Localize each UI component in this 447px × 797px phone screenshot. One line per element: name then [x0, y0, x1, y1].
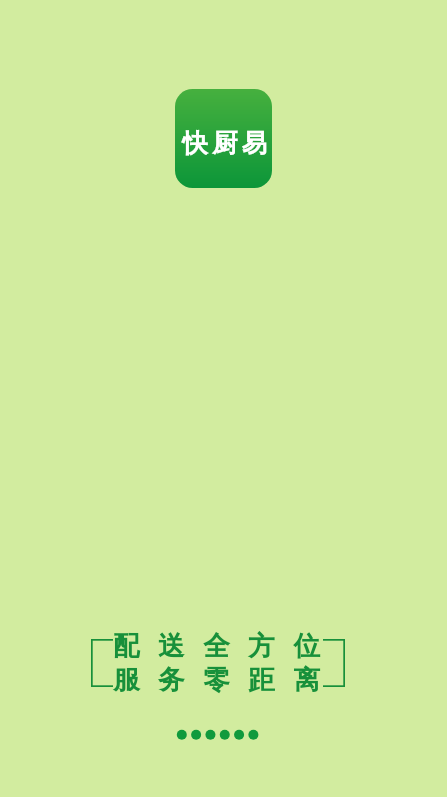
staticText: 服务零距离: [113, 663, 339, 696]
staticText: 快厨易: [182, 127, 272, 159]
button[interactable]: 快厨易 应用图标: [175, 89, 272, 188]
staticText: 配送全方位: [113, 629, 339, 662]
button[interactable]: 配送全方位 服务零距离: [91, 639, 345, 687]
